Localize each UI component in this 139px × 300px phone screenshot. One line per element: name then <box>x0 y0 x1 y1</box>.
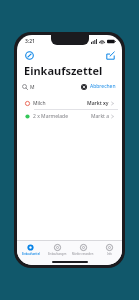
button[interactable]: Filter <box>23 49 35 61</box>
staticText: M <box>30 84 35 91</box>
button[interactable]: Einkaufswagen <box>44 241 70 258</box>
button[interactable]: Abbrechen <box>89 83 117 90</box>
button[interactable]: M <box>22 82 81 92</box>
staticText: Markt a <box>91 113 109 120</box>
staticText: Einkaufswagen <box>48 252 67 256</box>
button[interactable]: Märkte verwalten <box>70 241 96 258</box>
staticText: Einkaufszettel <box>22 252 40 256</box>
staticText: Einkaufszettel <box>24 63 103 78</box>
button[interactable]: Clear search <box>81 84 87 90</box>
staticText: 3:21 <box>25 38 35 45</box>
staticText: Milch <box>33 100 46 107</box>
button[interactable]: Einkaufszettel <box>17 241 44 258</box>
staticText: Markt xy <box>87 100 109 107</box>
button[interactable]: 2 x Marmelade <box>21 110 118 122</box>
staticText: Märkte verwalten <box>72 252 94 256</box>
button[interactable]: Compose <box>104 49 116 61</box>
staticText: Abbrechen <box>90 83 116 90</box>
button[interactable]: Info <box>96 241 122 258</box>
staticText: Info <box>107 252 112 256</box>
button[interactable]: Milch <box>21 97 118 109</box>
staticText: 2 x Marmelade <box>33 113 68 120</box>
